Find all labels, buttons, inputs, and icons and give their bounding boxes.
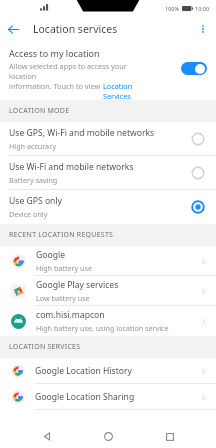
staticText: Low battery use <box>36 293 90 303</box>
staticText: High accuracy <box>9 141 57 151</box>
staticText: Battery saving <box>9 175 58 185</box>
staticText: Use GPS, Wi-Fi and mobile networks <box>9 127 155 139</box>
button[interactable]: Access to my location <box>0 42 216 100</box>
staticText: Allow selected apps to access your locat… <box>9 61 149 81</box>
button[interactable]: Google Location History <box>0 358 216 384</box>
staticText: 10:00 <box>195 5 210 12</box>
button[interactable]: Google Location Sharing <box>0 384 216 410</box>
staticText: Google Location Sharing <box>35 391 199 403</box>
button[interactable]: Location Services <box>103 81 149 100</box>
staticText: High battery use <box>36 263 93 273</box>
button[interactable]: Google Play services <box>0 276 216 306</box>
staticText: LOCATION MODE <box>9 106 70 116</box>
staticText: Device only <box>9 209 48 219</box>
staticText: High battery use, using location service <box>36 323 169 333</box>
staticText: 100% <box>165 5 180 12</box>
staticText: RECENT LOCATION REQUESTS <box>9 230 114 240</box>
button[interactable]: Use GPS only <box>0 190 216 224</box>
button[interactable]: More options <box>190 16 216 42</box>
button[interactable]: Google <box>0 246 216 276</box>
staticText: Access to my location <box>9 47 100 59</box>
staticText: information. Touch to view <box>9 81 103 91</box>
button[interactable]: Recents <box>155 425 185 448</box>
button[interactable]: Back <box>32 425 62 448</box>
button[interactable]: com.hisi.mapcon <box>0 306 216 336</box>
staticText: Google Location History <box>35 365 199 377</box>
staticText: Location services <box>33 22 118 36</box>
staticText: LOCATION SERVICES <box>9 342 81 352</box>
staticText: Use GPS only <box>9 195 62 207</box>
staticText: Google <box>36 249 66 261</box>
button[interactable]: Back <box>0 16 26 42</box>
button[interactable]: Access to my location toggle <box>181 62 207 75</box>
staticText: Google Play services <box>36 279 119 291</box>
button[interactable]: Use Wi-Fi and mobile networks <box>0 156 216 190</box>
button[interactable]: Use GPS, Wi-Fi and mobile networks <box>0 122 216 156</box>
staticText: Use Wi-Fi and mobile networks <box>9 161 134 173</box>
staticText: com.hisi.mapcon <box>36 309 105 321</box>
button[interactable]: Home <box>93 425 123 448</box>
